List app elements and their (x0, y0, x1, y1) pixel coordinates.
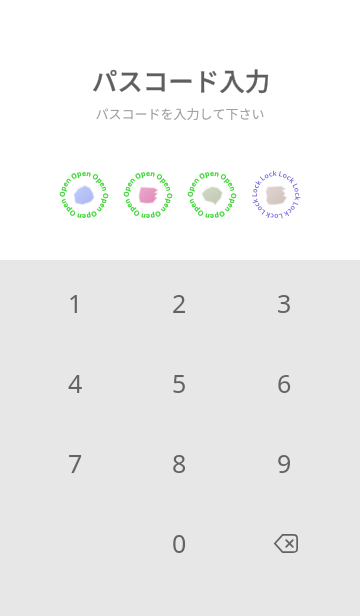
button[interactable]: 7 (23, 423, 127, 503)
staticText: 1 (68, 286, 83, 320)
staticText: 8 (172, 446, 187, 480)
button[interactable]: 6 (232, 343, 337, 423)
button[interactable]: 8 (127, 423, 232, 503)
button[interactable]: Entered digit (184, 167, 240, 223)
button[interactable]: 2 (127, 263, 232, 343)
button[interactable]: 3 (232, 263, 337, 343)
button[interactable]: 1 (23, 263, 127, 343)
staticText: 6 (277, 366, 292, 400)
button[interactable]: 4 (23, 343, 127, 423)
staticText: 4 (68, 366, 83, 400)
staticText: 7 (68, 446, 83, 480)
staticText: 5 (172, 366, 187, 400)
staticText: 2 (172, 286, 187, 320)
staticText: 3 (277, 286, 292, 320)
staticText: 0 (172, 526, 187, 560)
button[interactable]: 5 (127, 343, 232, 423)
button[interactable]: Entered digit (120, 167, 176, 223)
staticText: 9 (277, 446, 292, 480)
button[interactable]: Empty digit (248, 167, 304, 223)
button[interactable]: 0 (127, 503, 232, 583)
button[interactable]: 9 (232, 423, 337, 503)
button[interactable]: Backspace (232, 503, 337, 583)
button[interactable]: Entered digit (56, 167, 112, 223)
